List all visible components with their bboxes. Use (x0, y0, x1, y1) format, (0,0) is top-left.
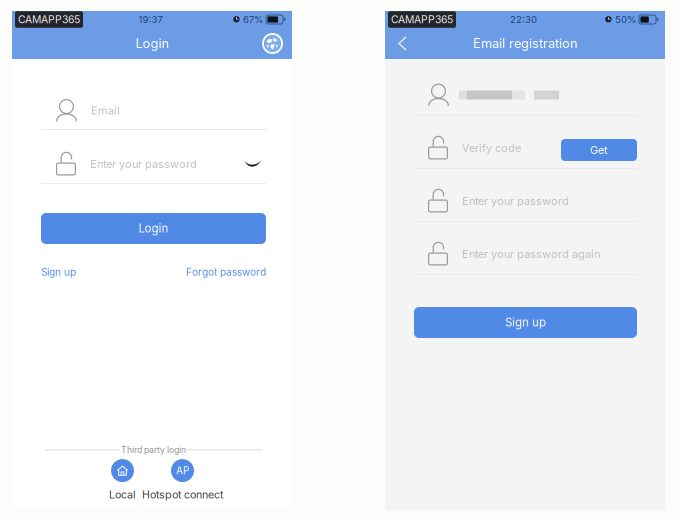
button[interactable]: Sign up (41, 266, 76, 278)
staticText: Sign up (505, 316, 546, 329)
staticText: 67% (243, 14, 263, 25)
staticText: CAMAPP365 (391, 13, 453, 26)
button[interactable]: Forgot password (186, 266, 266, 278)
staticText: CAMAPP365 (18, 13, 80, 26)
staticText: Login (135, 36, 168, 51)
staticText: Third party login (121, 445, 186, 455)
staticText: Email (91, 104, 120, 117)
staticText: Enter your password again (462, 247, 600, 261)
button[interactable]: Language (262, 33, 283, 54)
staticText: AP (176, 464, 189, 477)
staticText: Get (590, 143, 608, 157)
staticText: Verify code (462, 141, 521, 155)
staticText: Forgot password (186, 266, 266, 278)
button[interactable]: Sign up (414, 307, 637, 338)
button[interactable]: Local (109, 459, 136, 501)
button[interactable]: AP (142, 459, 223, 501)
button[interactable]: Show password (244, 160, 266, 168)
staticText: Enter your password (90, 157, 197, 171)
staticText: 19:37 (138, 14, 162, 25)
button[interactable]: Get (561, 135, 637, 161)
staticText: Sign up (41, 266, 76, 278)
staticText: 22:30 (510, 14, 537, 25)
staticText: Local (109, 488, 136, 501)
staticText: Hotspot connect (142, 488, 223, 501)
button[interactable]: Login (41, 213, 266, 244)
button[interactable]: Back (394, 36, 407, 51)
staticText: Login (138, 222, 168, 235)
staticText: Email registration (473, 36, 577, 51)
staticText: 50% (615, 14, 636, 25)
staticText: Enter your password (462, 194, 569, 208)
